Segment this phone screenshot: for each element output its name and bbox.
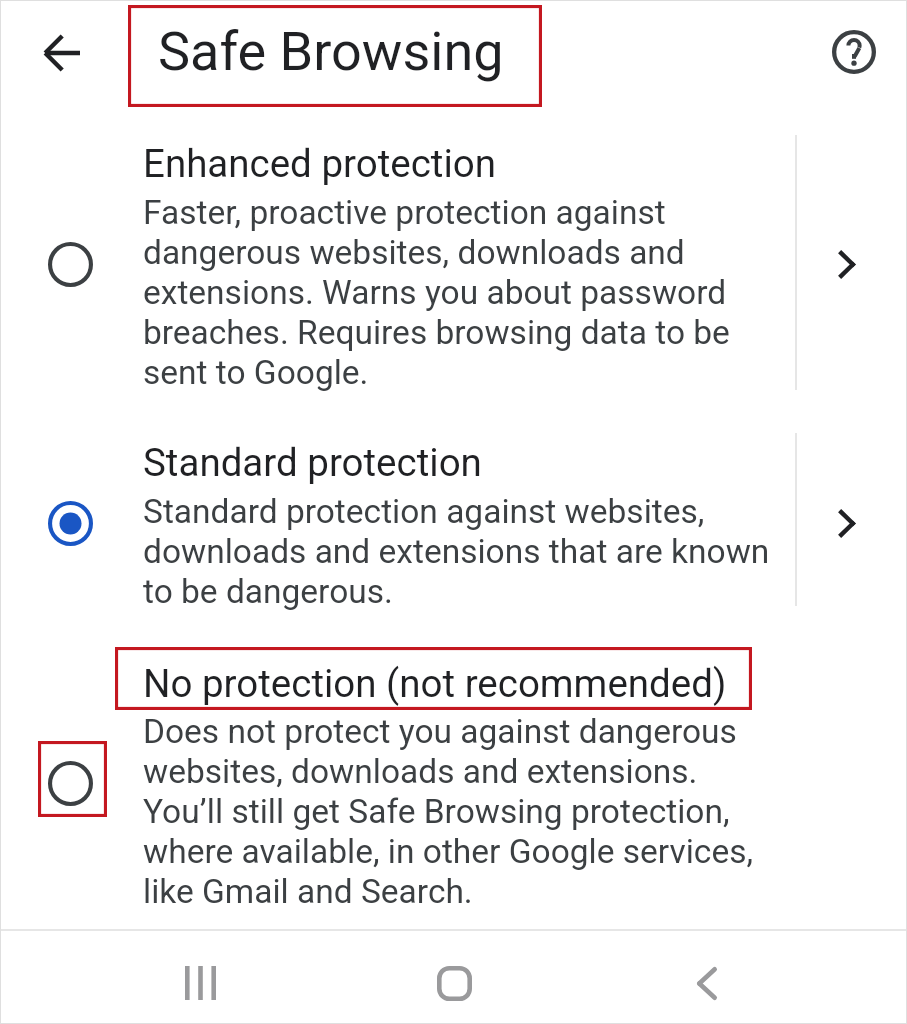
staticText: No protection (not recommended) — [143, 661, 727, 706]
button[interactable]: Standard protection — [0, 412, 907, 630]
staticText: Standard protection — [143, 440, 482, 485]
button[interactable]: Recent apps — [150, 941, 250, 1024]
button[interactable]: Standard protection settings — [807, 483, 887, 563]
button[interactable]: Back — [657, 941, 757, 1024]
button[interactable]: Enhanced protection settings — [807, 224, 887, 304]
staticText: Safe Browsing — [158, 20, 504, 83]
button[interactable]: Enhanced protection — [0, 112, 907, 412]
staticText: Faster, proactive protection against dan… — [143, 193, 730, 393]
button[interactable]: No protection (not recommended) — [0, 630, 907, 928]
button[interactable]: Home — [404, 941, 504, 1024]
button[interactable]: Help — [818, 16, 890, 88]
staticText: Enhanced protection — [143, 141, 496, 186]
staticText: Standard protection against websites, do… — [143, 492, 770, 612]
staticText: Does not protect you against dangerous w… — [143, 712, 754, 912]
button[interactable]: Navigate up — [25, 17, 97, 89]
